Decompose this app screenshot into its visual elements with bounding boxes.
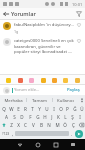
button[interactable]: Filter [73, 8, 84, 19]
button[interactable]: X [15, 121, 22, 129]
button[interactable]: Switch keyboard [65, 139, 81, 150]
button[interactable]: I [50, 105, 57, 113]
staticText: I [53, 106, 55, 112]
staticText: Ö [63, 122, 67, 128]
button[interactable]: Emoji [17, 77, 23, 83]
button[interactable]: Emoji [40, 77, 46, 83]
staticText: Z [10, 122, 13, 128]
button[interactable]: H [41, 113, 48, 121]
button[interactable]: R [22, 105, 29, 113]
button[interactable]: Shift [0, 121, 8, 129]
button[interactable]: Emoji [74, 77, 80, 83]
button[interactable]: Like [76, 38, 82, 44]
button[interactable]: fabulNasipbklm 'in düşünceyorsunuz?! [0, 20, 85, 36]
staticText: Tamam [32, 97, 47, 103]
button[interactable]: F [26, 113, 34, 121]
staticText: U [45, 106, 49, 112]
button[interactable]: Voice input [78, 95, 85, 104]
button[interactable]: N [45, 121, 53, 129]
staticText: P [66, 106, 69, 112]
button[interactable]: I [76, 113, 83, 121]
staticText: Ş [71, 114, 74, 120]
staticText: Ğ [73, 106, 77, 112]
button[interactable]: Ç [69, 121, 77, 129]
button[interactable]: Send [74, 129, 84, 138]
staticText: Yorum ekle... [14, 87, 65, 93]
button[interactable]: Comma [10, 129, 15, 138]
staticText: I [79, 114, 81, 120]
button[interactable]: Emoji [5, 77, 11, 83]
button[interactable]: Ö [61, 121, 69, 129]
button[interactable]: M [53, 121, 61, 129]
button[interactable]: Home [29, 139, 47, 150]
staticText: . [71, 131, 73, 137]
button[interactable]: Like [76, 22, 82, 28]
button[interactable]: Y [36, 105, 43, 113]
button[interactable]: Back [11, 139, 29, 150]
button[interactable]: Period [69, 129, 74, 138]
button[interactable]: Z [8, 121, 15, 129]
button[interactable]: G [34, 113, 41, 121]
button[interactable]: Recents [47, 139, 65, 150]
staticText: Y [38, 106, 41, 112]
staticText: O [59, 106, 63, 112]
button[interactable]: K [55, 113, 62, 121]
staticText: cateiges0000 Senelineli en çok kazandıra… [14, 38, 74, 54]
staticText: J [51, 114, 53, 120]
button[interactable]: S [10, 113, 18, 121]
button[interactable]: Kullanıcı [53, 95, 78, 104]
staticText: G [36, 114, 40, 120]
button[interactable]: Backspace [77, 121, 85, 129]
staticText: X [17, 122, 20, 128]
staticText: Kullanıcı [57, 97, 74, 103]
staticText: Yorumlar [11, 10, 36, 17]
button[interactable]: A [2, 113, 10, 121]
button[interactable]: ?123 [1, 129, 10, 138]
button[interactable]: Q [0, 105, 8, 113]
button[interactable]: J [48, 113, 55, 121]
button[interactable]: Emoji [51, 77, 57, 83]
staticText: Ü [80, 106, 84, 112]
button[interactable]: V [29, 121, 37, 129]
button[interactable]: D [18, 113, 26, 121]
button[interactable]: cateiges0000 Senelineli en çok kazandıra… [0, 36, 85, 56]
staticText: , [12, 131, 14, 137]
staticText: A [5, 114, 8, 120]
staticText: Paylaş [67, 87, 80, 93]
staticText: L [64, 114, 67, 120]
staticText: B [40, 122, 43, 128]
staticText: Q [2, 106, 6, 112]
staticText: N [47, 122, 51, 128]
staticText: Ç [72, 122, 75, 128]
staticText: S [13, 114, 16, 120]
button[interactable]: Tamam [27, 95, 52, 104]
button[interactable]: Merhaba [0, 95, 26, 104]
button[interactable]: O [57, 105, 64, 113]
staticText: ?123 [2, 131, 10, 136]
staticText: D [20, 114, 24, 120]
button[interactable]: P [64, 105, 71, 113]
staticText: T [31, 106, 34, 112]
button[interactable]: B [37, 121, 45, 129]
button[interactable]: Ş [69, 113, 76, 121]
staticText: 1g [14, 29, 19, 34]
button[interactable]: Paylaş [65, 86, 82, 94]
button[interactable]: Emoji [28, 77, 34, 83]
staticText: C [24, 122, 27, 128]
button[interactable]: T [29, 105, 36, 113]
staticText: fabulNasipbklm 'in düşünceyorsunuz?! [14, 22, 74, 28]
button[interactable]: Ğ [71, 105, 78, 113]
staticText: F [29, 114, 32, 120]
button[interactable]: C [22, 121, 29, 129]
button[interactable]: W [8, 105, 15, 113]
staticText: E [17, 106, 20, 112]
staticText: K [57, 114, 60, 120]
button[interactable]: Ü [78, 105, 85, 113]
button[interactable]: L [62, 113, 69, 121]
button[interactable]: E [15, 105, 22, 113]
button[interactable]: Back [0, 8, 11, 19]
button[interactable]: U [43, 105, 50, 113]
button[interactable]: Emoji [62, 77, 68, 83]
staticText: W [9, 106, 14, 112]
